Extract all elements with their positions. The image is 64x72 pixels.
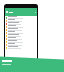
button[interactable] [5, 37, 37, 40]
button[interactable] [5, 43, 37, 46]
button[interactable]: Menu [6, 11, 8, 13]
button[interactable] [5, 22, 37, 25]
button[interactable] [5, 40, 37, 43]
button[interactable] [5, 19, 37, 22]
button[interactable] [5, 28, 37, 31]
button[interactable] [5, 25, 37, 28]
button[interactable] [5, 16, 37, 19]
button[interactable] [5, 46, 37, 49]
button[interactable] [5, 31, 37, 34]
button[interactable] [5, 34, 37, 37]
